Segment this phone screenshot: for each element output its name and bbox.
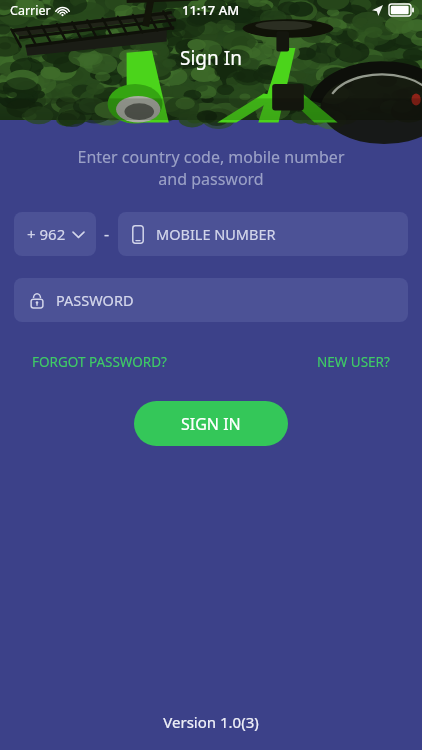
staticText: PASSWORD — [56, 290, 134, 310]
button[interactable]: + 962 — [14, 212, 96, 256]
button[interactable]: FORGOT PASSWORD? — [30, 349, 169, 375]
staticText: Sign In — [180, 45, 242, 71]
staticText: - — [104, 223, 110, 245]
staticText: Version 1.0(3) — [0, 712, 422, 732]
staticText: Enter country code, mobile number and pa… — [24, 146, 398, 190]
staticText: NEW USER? — [317, 353, 390, 371]
staticText: FORGOT PASSWORD? — [32, 353, 167, 371]
button[interactable]: SIGN IN — [134, 401, 288, 446]
button[interactable]: NEW USER? — [315, 349, 392, 375]
staticText: + 962 — [27, 224, 66, 244]
button[interactable]: MOBILE NUMBER — [118, 212, 408, 256]
staticText: Carrier — [10, 2, 51, 19]
button[interactable]: PASSWORD — [14, 278, 408, 322]
staticText: MOBILE NUMBER — [156, 224, 276, 244]
staticText: 11:17 AM — [182, 1, 240, 19]
staticText: SIGN IN — [181, 413, 241, 435]
